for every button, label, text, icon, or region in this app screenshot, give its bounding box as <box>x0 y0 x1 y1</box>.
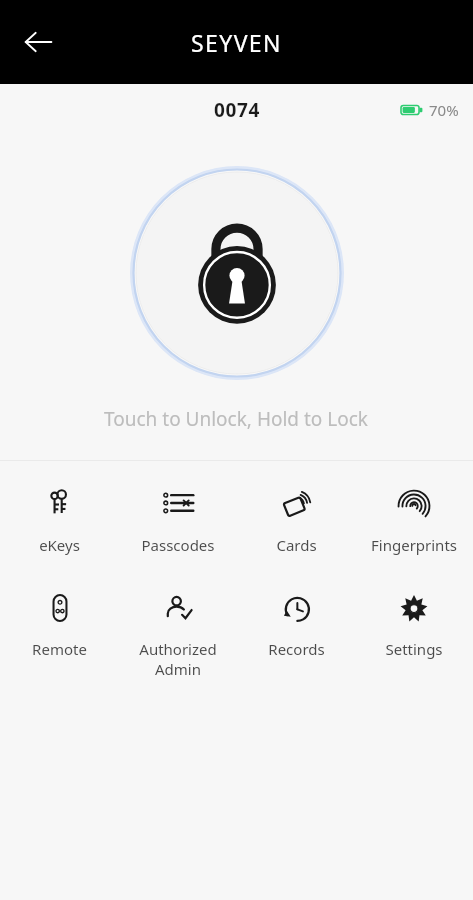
staticText: Settings <box>385 639 443 659</box>
button[interactable]: eKeys <box>0 483 119 559</box>
staticText: SEYVEN <box>191 27 282 58</box>
staticText: Authorized Admin <box>139 639 217 679</box>
button[interactable]: Fingerprints <box>355 483 473 559</box>
button[interactable]: Authorized Admin <box>119 587 237 683</box>
staticText: Fingerprints <box>371 535 457 555</box>
staticText: 0074 <box>214 97 260 123</box>
button[interactable]: Back <box>12 16 64 68</box>
button[interactable]: Settings <box>355 587 473 663</box>
staticText: Remote <box>32 639 87 659</box>
staticText: Passcodes <box>141 535 215 555</box>
button[interactable]: Records <box>237 587 355 663</box>
button[interactable]: Touch to Unlock, Hold to Lock <box>130 166 344 380</box>
staticText: Records <box>268 639 325 659</box>
button[interactable]: Cards <box>237 483 355 559</box>
button[interactable]: Remote <box>0 587 119 663</box>
staticText: 70% <box>429 100 459 120</box>
button[interactable]: Passcodes <box>119 483 237 559</box>
staticText: Touch to Unlock, Hold to Lock <box>104 406 369 432</box>
staticText: Cards <box>276 535 317 555</box>
staticText: eKeys <box>39 535 80 555</box>
